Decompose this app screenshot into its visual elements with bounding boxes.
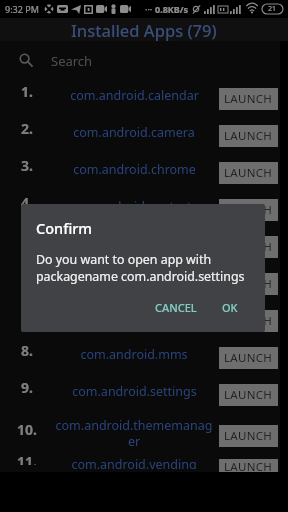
button[interactable]: LAUNCH xyxy=(219,384,278,406)
staticText: Search xyxy=(51,52,93,70)
staticText: 10. xyxy=(17,420,37,439)
staticText: 4. xyxy=(21,193,33,212)
button[interactable]: Search xyxy=(0,41,280,80)
staticText: LAUNCH xyxy=(224,165,273,181)
button[interactable]: 5. xyxy=(0,228,280,265)
staticText: LAUNCH xyxy=(224,276,273,292)
button[interactable]: 2. xyxy=(0,117,280,154)
button[interactable]: 1. xyxy=(0,80,280,117)
staticText: 2. xyxy=(21,119,33,138)
button[interactable]: LAUNCH xyxy=(219,310,278,332)
button[interactable]: LAUNCH xyxy=(219,347,278,369)
staticText: 9:32 PM xyxy=(5,3,39,15)
button[interactable]: CANCEL xyxy=(147,296,205,319)
staticText: LAUNCH xyxy=(224,239,273,255)
button[interactable]: LAUNCH xyxy=(219,125,278,147)
staticText: 11. xyxy=(17,452,37,465)
button[interactable]: 7. xyxy=(0,302,280,339)
staticText: com.android.camera xyxy=(73,124,195,141)
staticText: LAUNCH xyxy=(224,350,273,366)
staticText: com.android.chrome xyxy=(73,161,196,178)
staticText: LAUNCH xyxy=(224,428,273,444)
button[interactable]: OK xyxy=(214,296,246,319)
button[interactable]: 8. xyxy=(0,339,280,376)
button[interactable]: LAUNCH xyxy=(219,199,278,221)
button[interactable]: LAUNCH xyxy=(219,236,278,258)
staticText: LAUNCH xyxy=(224,313,273,329)
staticText: LAUNCH xyxy=(224,128,273,144)
button[interactable]: 9. xyxy=(0,376,280,413)
button[interactable]: LAUNCH xyxy=(219,88,278,110)
staticText: Confirm xyxy=(36,218,93,238)
staticText: com.android.contacts xyxy=(70,198,198,215)
button[interactable]: 10. xyxy=(0,413,280,459)
staticText: 9. xyxy=(21,378,33,397)
button[interactable]: LAUNCH xyxy=(219,273,278,295)
staticText: 21 xyxy=(268,4,277,14)
staticText: CANCEL xyxy=(155,300,197,315)
staticText: com.android.settings xyxy=(72,383,197,400)
button[interactable]: 4. xyxy=(0,191,280,228)
staticText: LAUNCH xyxy=(224,91,273,107)
staticText: com.android.email xyxy=(79,272,189,289)
button[interactable]: LAUNCH xyxy=(219,162,278,184)
staticText: LAUNCH xyxy=(224,202,273,218)
staticText: 1. xyxy=(21,82,33,101)
staticText: ··· xyxy=(145,3,153,15)
staticText: 3. xyxy=(21,156,33,175)
other: Search xyxy=(19,53,33,67)
staticText: com.android.calendar xyxy=(70,87,199,104)
button[interactable]: LAUNCH xyxy=(219,459,278,472)
staticText: OK xyxy=(222,300,238,315)
staticText: 0.8KB/s xyxy=(155,3,189,15)
button[interactable]: 6. xyxy=(0,265,280,302)
staticText: Installed Apps (79) xyxy=(71,19,217,41)
button[interactable]: LAUNCH xyxy=(219,425,278,447)
staticText: Do you want to open app with packagename… xyxy=(36,251,259,285)
staticText: LAUNCH xyxy=(224,459,273,472)
staticText: LAUNCH xyxy=(224,387,273,403)
staticText: com.android.gallery3d xyxy=(68,309,201,326)
staticText: com.android.mms xyxy=(80,346,188,363)
button[interactable]: 3. xyxy=(0,154,280,191)
staticText: com.android.vending xyxy=(71,456,197,469)
staticText: 8. xyxy=(21,341,33,360)
button[interactable]: 11. xyxy=(0,459,280,472)
staticText: com.android.thememanager xyxy=(54,417,214,449)
